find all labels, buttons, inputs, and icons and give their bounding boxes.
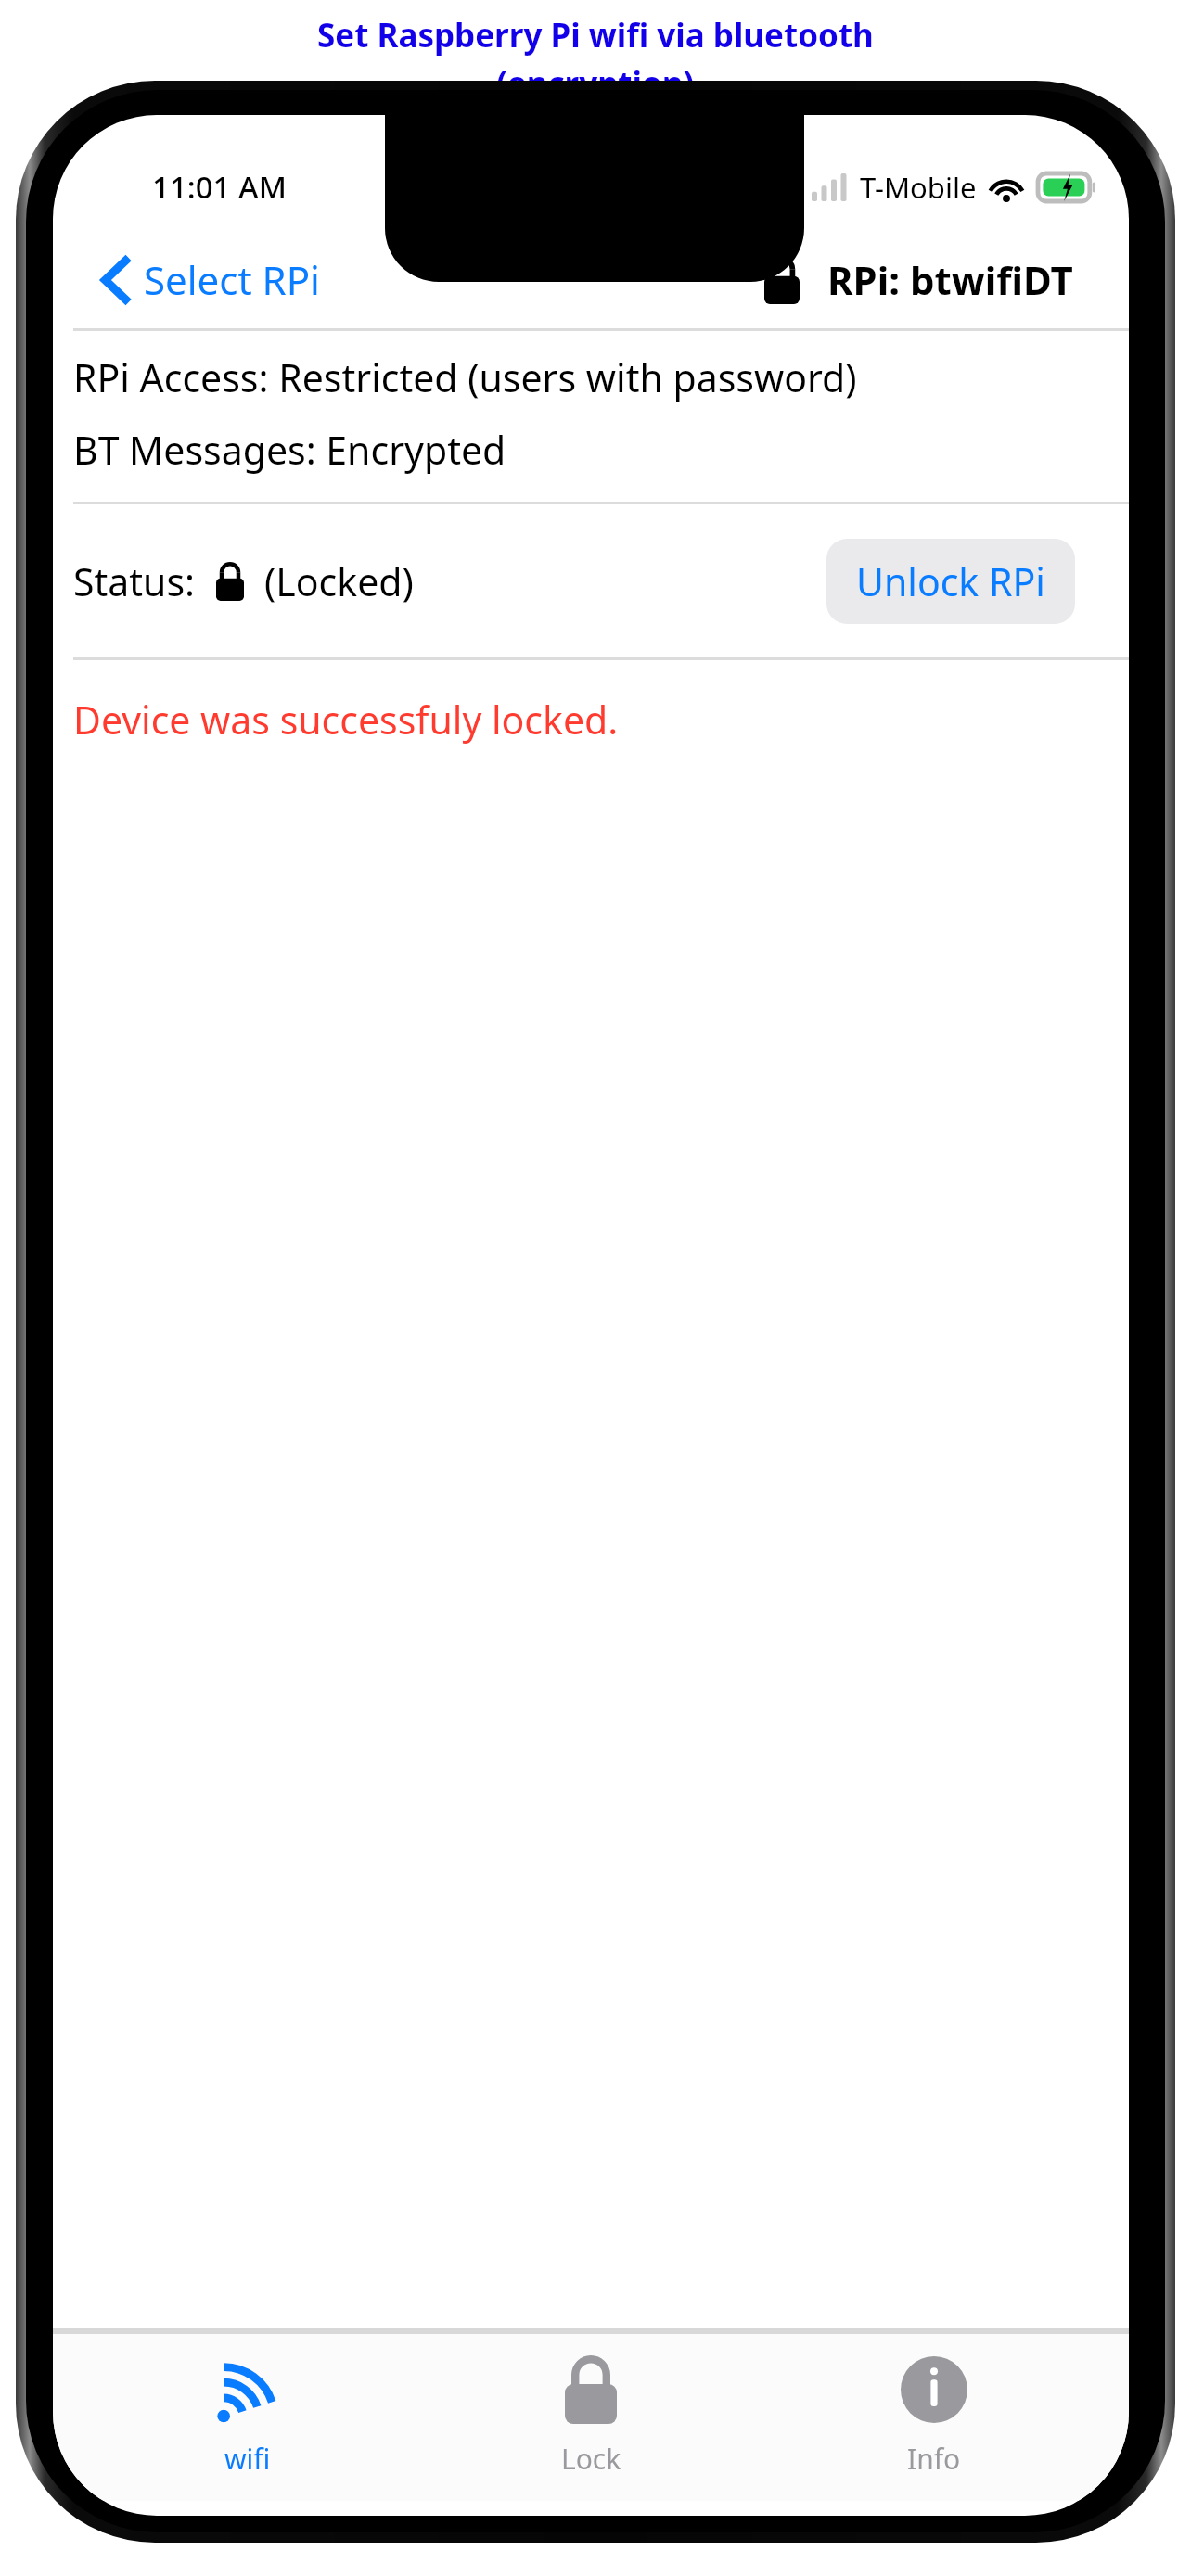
staticText: Set Raspberry Pi wifi via bluetooth: [317, 13, 874, 57]
staticText: BT Messages: Encrypted: [73, 424, 506, 476]
staticText: T-Mobile: [860, 168, 977, 207]
staticText: RPi Access: Restricted (users with passw…: [73, 351, 857, 403]
staticText: wifi: [224, 2440, 271, 2478]
staticText: Select RPi: [144, 253, 320, 306]
staticText: (encryption): [496, 61, 695, 106]
staticText: Unlock RPi: [856, 555, 1045, 607]
button[interactable]: Unlock RPi: [826, 539, 1075, 624]
staticText: Info: [907, 2440, 961, 2478]
button[interactable]: Lock: [442, 2334, 739, 2501]
staticText: Device was successfuly locked.: [73, 694, 619, 746]
button[interactable]: Info: [786, 2334, 1082, 2501]
button[interactable]: wifi: [99, 2334, 396, 2501]
staticText: Lock: [561, 2440, 621, 2478]
staticText: (Locked): [264, 555, 414, 607]
staticText: RPi: btwifiDT: [827, 253, 1073, 306]
staticText: 11:01 AM: [152, 166, 287, 208]
button[interactable]: Select RPi: [90, 244, 333, 315]
staticText: Status:: [73, 555, 196, 607]
